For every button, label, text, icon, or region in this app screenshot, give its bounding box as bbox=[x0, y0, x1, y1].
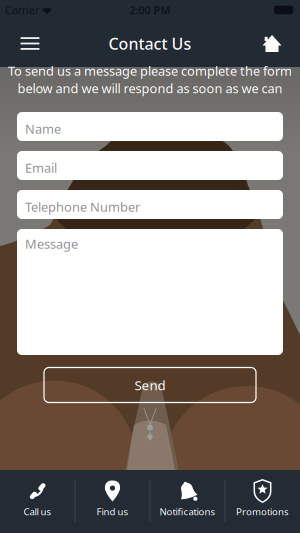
staticText: Name bbox=[25, 120, 61, 137]
staticText: Call us bbox=[23, 505, 51, 518]
staticText: Carrier bbox=[5, 3, 39, 17]
staticText: 2:00 PM bbox=[129, 3, 170, 17]
button[interactable]: Send bbox=[44, 367, 256, 402]
button[interactable]: Notifications bbox=[150, 470, 225, 533]
button[interactable]: Email bbox=[17, 151, 283, 180]
button[interactable]: Find us bbox=[75, 470, 150, 533]
staticText: Promotions bbox=[236, 505, 289, 518]
button[interactable] bbox=[252, 21, 292, 65]
button[interactable] bbox=[10, 21, 50, 65]
staticText: Message bbox=[25, 235, 78, 252]
button[interactable]: Telephone Number bbox=[17, 190, 283, 219]
button[interactable]: Call us bbox=[0, 470, 75, 533]
staticText: Find us bbox=[96, 505, 128, 518]
staticText: Telephone Number bbox=[25, 198, 140, 215]
button[interactable]: Message bbox=[17, 229, 283, 355]
button[interactable]: Name bbox=[17, 112, 283, 141]
staticText: To send us a message please complete the… bbox=[8, 62, 292, 79]
staticText: Notifications bbox=[159, 505, 215, 518]
staticText: Email bbox=[25, 159, 57, 176]
staticText: below and we will respond as soon as we … bbox=[17, 79, 282, 97]
staticText: Send bbox=[134, 376, 165, 394]
button[interactable]: Promotions bbox=[225, 470, 300, 533]
staticText: Contact Us bbox=[108, 33, 191, 54]
